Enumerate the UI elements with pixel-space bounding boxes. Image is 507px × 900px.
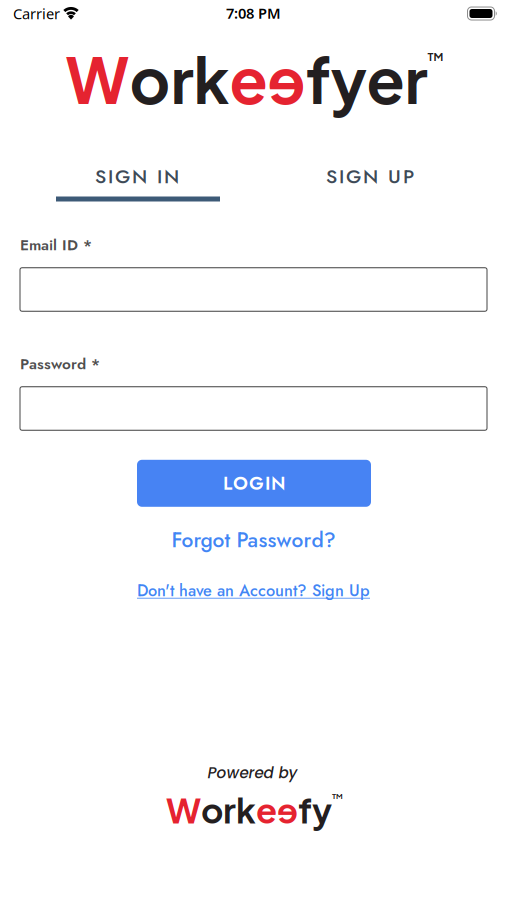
staticText: TM xyxy=(427,50,443,63)
button[interactable] xyxy=(20,387,487,430)
staticText: e xyxy=(277,788,298,831)
staticText: e xyxy=(267,39,305,118)
staticText: L O G I N xyxy=(223,470,285,497)
staticText: Powered by xyxy=(207,762,297,784)
staticText: W xyxy=(166,788,201,831)
staticText: Email ID * xyxy=(20,234,92,256)
staticText: 7:08 PM xyxy=(226,3,281,23)
staticText: Password * xyxy=(20,353,100,375)
staticText: Don't have an Account? Sign Up xyxy=(137,579,370,602)
staticText: TM xyxy=(332,791,343,801)
staticText: fyer xyxy=(305,39,427,118)
button[interactable]: L O G I N xyxy=(137,460,371,507)
staticText: e xyxy=(256,788,277,831)
staticText: Carrier xyxy=(13,4,60,23)
staticText: S I G N U P xyxy=(326,162,414,190)
staticText: ork xyxy=(129,39,229,118)
button[interactable]: S I G N I N xyxy=(20,148,253,204)
staticText: S I G N I N xyxy=(95,162,179,190)
staticText: Forgot Password? xyxy=(171,525,335,555)
button[interactable] xyxy=(20,268,487,311)
staticText: e xyxy=(229,39,267,118)
button[interactable]: S I G N U P xyxy=(253,148,486,204)
button[interactable]: Don't have an Account? Sign Up xyxy=(137,579,370,602)
staticText: W xyxy=(65,39,129,118)
staticText: ork xyxy=(201,788,256,831)
button[interactable]: Forgot Password? xyxy=(171,525,335,555)
staticText: fy xyxy=(298,788,332,831)
